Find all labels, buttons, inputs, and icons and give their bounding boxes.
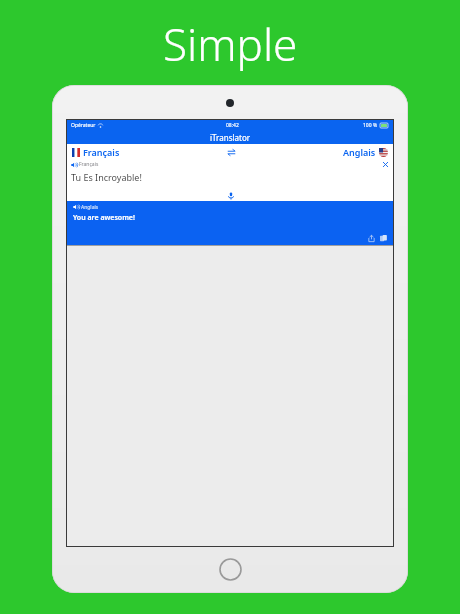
staticText: 08:42 — [226, 122, 239, 129]
staticText: Simple — [163, 14, 298, 74]
button[interactable]: Clear — [382, 161, 389, 168]
staticText: Français — [83, 146, 120, 158]
staticText: You are awesome! — [73, 213, 135, 223]
staticText: 100 % — [363, 122, 378, 129]
button[interactable]: Swap languages — [224, 145, 238, 159]
staticText: iTranslator — [210, 132, 251, 143]
button[interactable]: Microphone — [225, 190, 236, 201]
button[interactable]: Play source — [71, 162, 77, 168]
button[interactable]: Anglais — [342, 146, 389, 158]
staticText: Opérateur — [71, 122, 96, 129]
button[interactable]: Play translation — [73, 204, 79, 210]
button[interactable]: Copy — [379, 234, 388, 243]
button[interactable]: Play translation — [67, 201, 393, 245]
staticText: Tu Es Incroyable! — [71, 171, 142, 183]
staticText: Anglais — [343, 146, 376, 158]
button[interactable]: Share — [367, 234, 376, 243]
button[interactable]: Français — [71, 146, 121, 158]
staticText: Français — [79, 161, 99, 168]
staticText: Anglais — [81, 204, 99, 211]
